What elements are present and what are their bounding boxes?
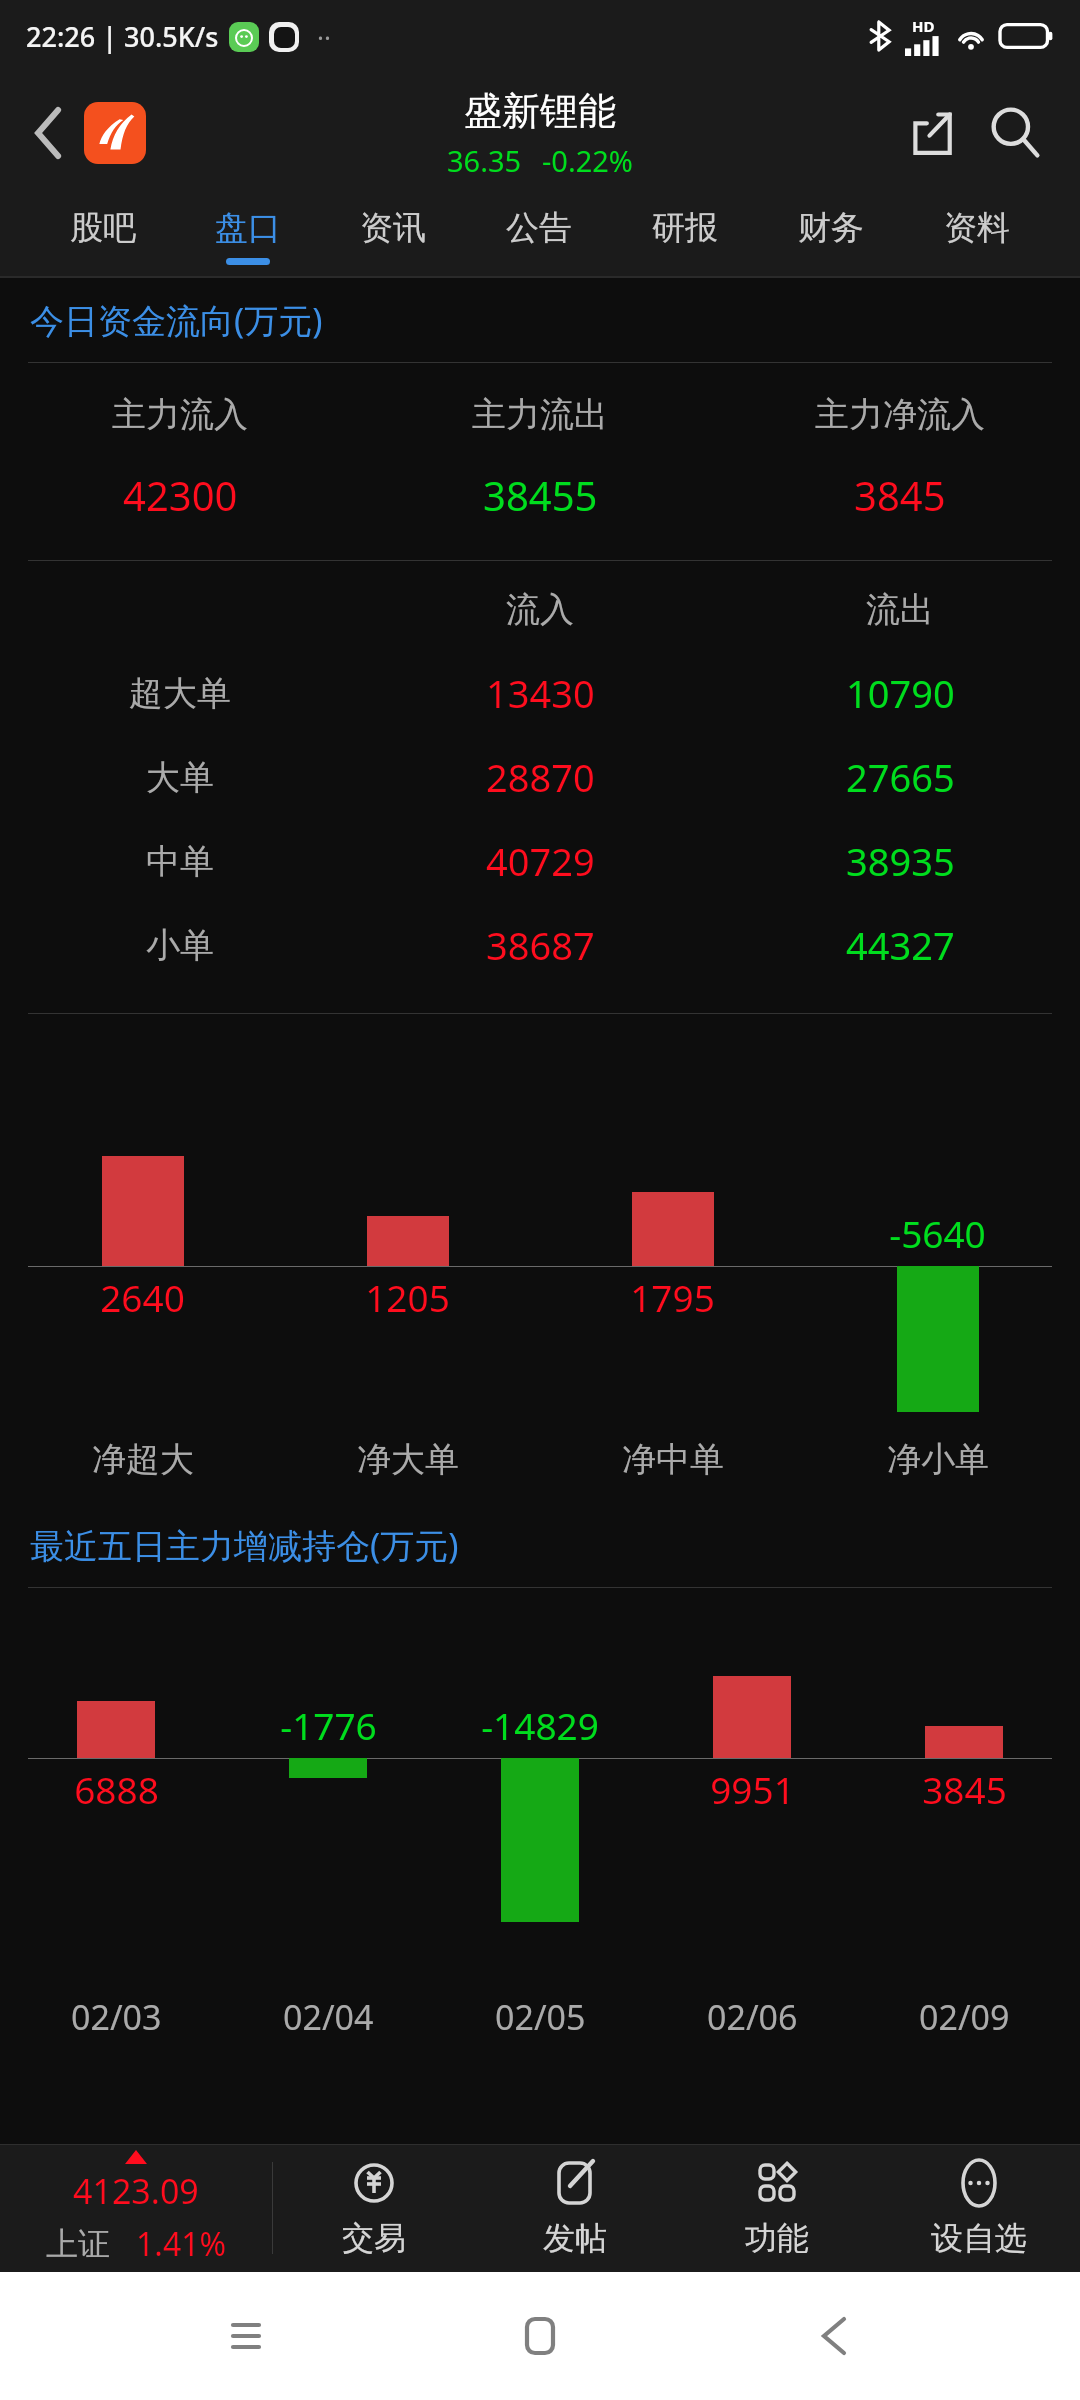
- button[interactable]: 最近任务: [198, 2288, 294, 2384]
- staticText: 净超大: [92, 1438, 194, 1481]
- staticText: 36.35: [447, 141, 522, 180]
- staticText: 02/06: [707, 1994, 798, 2040]
- staticText: 3845: [854, 468, 946, 522]
- staticText: 净大单: [357, 1438, 459, 1481]
- staticText: -1776: [280, 1700, 377, 1750]
- button[interactable]: 股吧: [30, 194, 175, 278]
- staticText: 盘口: [215, 207, 281, 249]
- staticText: 1205: [365, 1272, 450, 1322]
- button[interactable]: 分享: [894, 94, 972, 172]
- staticText: 中单: [146, 840, 214, 883]
- staticText: 1.41%: [136, 2222, 227, 2266]
- staticText: 发帖: [543, 2218, 607, 2258]
- button[interactable]: 主屏幕: [492, 2288, 588, 2384]
- staticText: 42300: [123, 468, 238, 522]
- staticText: 净小单: [887, 1438, 989, 1481]
- staticText: 盛新锂能: [464, 87, 616, 135]
- button[interactable]: 财务: [758, 194, 904, 278]
- staticText: HD: [912, 16, 935, 36]
- button[interactable]: 4123.09: [0, 2144, 272, 2272]
- button[interactable]: 搜索: [972, 90, 1058, 176]
- staticText: 今日资金流向(万元): [30, 297, 323, 343]
- button[interactable]: 资料: [904, 194, 1050, 278]
- staticText: 主力流出: [472, 393, 608, 436]
- button[interactable]: 中单: [0, 819, 1080, 903]
- staticText: 3845: [922, 1764, 1007, 1814]
- staticText: 资料: [944, 207, 1010, 249]
- staticText: 38687: [486, 919, 595, 971]
- staticText: 交易: [342, 2218, 406, 2258]
- staticText: 40729: [486, 835, 595, 887]
- button[interactable]: 公告: [466, 194, 612, 278]
- button[interactable]: 功能: [676, 2144, 878, 2272]
- staticText: 02/04: [283, 1994, 374, 2040]
- staticText: 13430: [486, 667, 595, 719]
- staticText: 股吧: [70, 207, 136, 249]
- staticText: 10790: [846, 667, 955, 719]
- button[interactable]: 应用图标: [84, 102, 146, 164]
- staticText: 研报: [652, 207, 718, 249]
- staticText: 净中单: [622, 1438, 724, 1481]
- staticText: 38935: [846, 835, 955, 887]
- button[interactable]: 盘口: [175, 194, 320, 278]
- staticText: 上证: [46, 2224, 110, 2264]
- staticText: 财务: [798, 207, 864, 249]
- button[interactable]: 设自选: [878, 2144, 1080, 2272]
- button[interactable]: 返回: [786, 2288, 882, 2384]
- staticText: 38455: [483, 468, 598, 522]
- staticText: 流出: [866, 588, 934, 631]
- staticText: 功能: [745, 2218, 809, 2258]
- staticText: 44327: [846, 919, 955, 971]
- staticText: 22:26 | 30.5K/s: [26, 18, 219, 55]
- staticText: 主力流入: [112, 393, 248, 436]
- staticText: -14829: [481, 1700, 599, 1750]
- staticText: 最近五日主力增减持仓(万元): [30, 1522, 459, 1568]
- staticText: ··: [317, 19, 331, 54]
- staticText: 02/03: [71, 1994, 162, 2040]
- button[interactable]: 返回: [14, 98, 84, 168]
- staticText: -5640: [889, 1208, 986, 1258]
- staticText: 主力净流入: [815, 393, 985, 436]
- staticText: 流入: [506, 588, 574, 631]
- button[interactable]: 大单: [0, 735, 1080, 819]
- staticText: 28870: [486, 751, 595, 803]
- staticText: 4123.09: [73, 2168, 199, 2214]
- staticText: 6888: [74, 1764, 159, 1814]
- staticText: 2640: [100, 1272, 185, 1322]
- staticText: 02/05: [495, 1994, 586, 2040]
- staticText: 9951: [710, 1764, 795, 1814]
- staticText: 27665: [846, 751, 955, 803]
- staticText: 超大单: [129, 672, 231, 715]
- staticText: 1795: [630, 1272, 715, 1322]
- staticText: 资讯: [360, 207, 426, 249]
- button[interactable]: 发帖: [474, 2144, 676, 2272]
- staticText: 公告: [506, 207, 572, 249]
- button[interactable]: 资讯: [320, 194, 466, 278]
- button[interactable]: 超大单: [0, 651, 1080, 735]
- staticText: -0.22%: [542, 141, 633, 180]
- button[interactable]: 小单: [0, 903, 1080, 987]
- staticText: 设自选: [931, 2218, 1027, 2258]
- button[interactable]: 交易: [273, 2144, 474, 2272]
- staticText: 02/09: [919, 1994, 1010, 2040]
- staticText: 大单: [146, 756, 214, 799]
- staticText: 小单: [146, 924, 214, 967]
- button[interactable]: 研报: [612, 194, 758, 278]
